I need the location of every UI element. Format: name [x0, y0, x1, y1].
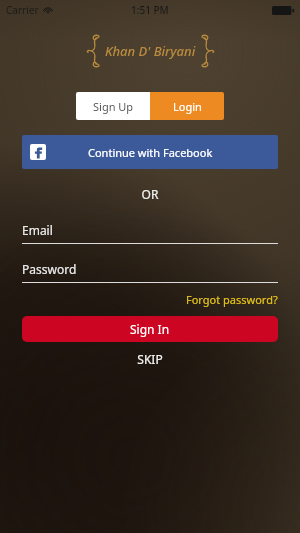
staticText: Continue with Facebook	[88, 145, 213, 160]
staticText: Password	[22, 261, 77, 277]
button[interactable]: Continue with Facebook	[22, 135, 278, 169]
button[interactable]: SKIP	[0, 351, 300, 367]
staticText: Login	[173, 99, 202, 114]
staticText: 1:51 PM	[131, 3, 169, 17]
button[interactable]: Sign Up	[76, 92, 150, 120]
staticText: Carrier	[6, 3, 39, 17]
button[interactable]: Password	[22, 261, 278, 283]
button[interactable]: Login	[150, 92, 224, 120]
staticText: Email	[22, 222, 53, 238]
button[interactable]: Email	[22, 222, 278, 244]
staticText: Khan D' Biryani	[105, 42, 196, 60]
staticText: Sign Up	[93, 99, 134, 114]
button[interactable]: Sign In	[22, 316, 278, 342]
button[interactable]: Forgot password?	[186, 292, 278, 307]
staticText: Forgot password?	[186, 292, 278, 307]
staticText: Sign In	[130, 321, 170, 337]
staticText: OR	[0, 186, 300, 202]
